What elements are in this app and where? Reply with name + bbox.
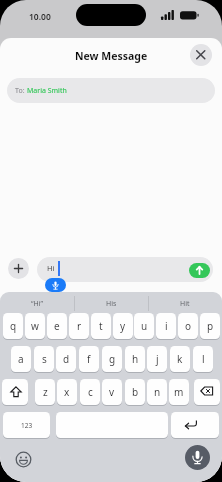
staticText: h bbox=[132, 352, 139, 366]
staticText: o bbox=[185, 319, 192, 333]
staticText: z bbox=[43, 385, 48, 399]
button[interactable]: h bbox=[125, 346, 145, 372]
button[interactable] bbox=[2, 379, 28, 405]
staticText: b bbox=[132, 385, 139, 399]
button[interactable]: f bbox=[79, 346, 99, 372]
button[interactable] bbox=[45, 278, 66, 292]
button[interactable]: j bbox=[147, 346, 167, 372]
button[interactable]: 123 bbox=[3, 412, 50, 438]
button[interactable] bbox=[194, 379, 220, 405]
staticText: a bbox=[18, 352, 24, 366]
button[interactable]: q bbox=[3, 313, 23, 339]
button[interactable]: o bbox=[178, 313, 198, 339]
button[interactable]: Hit bbox=[157, 296, 213, 311]
staticText: n bbox=[154, 385, 161, 399]
staticText: y bbox=[120, 319, 126, 333]
button[interactable] bbox=[189, 263, 210, 278]
staticText: Hit bbox=[180, 299, 190, 309]
button[interactable]: n bbox=[147, 379, 167, 405]
staticText: k bbox=[177, 352, 183, 366]
button[interactable]: z bbox=[35, 379, 55, 405]
staticText: x bbox=[64, 385, 70, 399]
staticText: r bbox=[77, 319, 82, 333]
staticText: e bbox=[54, 319, 60, 333]
button[interactable]: m bbox=[169, 379, 189, 405]
staticText: u bbox=[141, 319, 148, 333]
staticText: “Hi” bbox=[31, 299, 44, 309]
staticText: To: bbox=[15, 86, 27, 96]
button[interactable]: k bbox=[170, 346, 190, 372]
button[interactable]: d bbox=[56, 346, 76, 372]
staticText: c bbox=[88, 385, 93, 399]
button[interactable]: a bbox=[11, 346, 31, 372]
staticText: q bbox=[10, 319, 17, 333]
button[interactable]: His bbox=[83, 296, 139, 311]
button[interactable]: i bbox=[156, 313, 176, 339]
staticText: d bbox=[63, 352, 70, 366]
staticText: j bbox=[156, 352, 159, 366]
button[interactable]: x bbox=[57, 379, 77, 405]
button[interactable]: l bbox=[193, 346, 213, 372]
staticText: v bbox=[109, 385, 115, 399]
staticText: 123 bbox=[21, 421, 33, 430]
button[interactable]: s bbox=[34, 346, 54, 372]
button[interactable]: c bbox=[80, 379, 100, 405]
button[interactable]: e bbox=[47, 313, 67, 339]
button[interactable]: g bbox=[102, 346, 122, 372]
staticText: Hi bbox=[47, 263, 55, 273]
staticText: s bbox=[42, 352, 47, 366]
button[interactable] bbox=[8, 258, 29, 279]
staticText: New Message bbox=[75, 49, 148, 63]
button[interactable] bbox=[190, 44, 212, 66]
button[interactable]: y bbox=[113, 313, 133, 339]
staticText: Maria Smith bbox=[27, 86, 67, 96]
button[interactable]: To: bbox=[7, 78, 215, 103]
button[interactable]: “Hi” bbox=[9, 296, 65, 311]
staticText: 10.00 bbox=[29, 11, 51, 23]
button[interactable]: p bbox=[200, 313, 220, 339]
button[interactable] bbox=[15, 451, 32, 468]
button[interactable]: b bbox=[125, 379, 145, 405]
button[interactable] bbox=[185, 445, 210, 470]
button[interactable]: w bbox=[25, 313, 45, 339]
button[interactable]: r bbox=[69, 313, 89, 339]
button[interactable]: u bbox=[134, 313, 154, 339]
button[interactable] bbox=[171, 412, 219, 438]
staticText: w bbox=[31, 319, 39, 333]
button[interactable] bbox=[56, 412, 168, 438]
button[interactable]: t bbox=[91, 313, 111, 339]
staticText: i bbox=[165, 319, 168, 333]
staticText: t bbox=[99, 319, 103, 333]
staticText: m bbox=[174, 385, 184, 399]
staticText: g bbox=[109, 352, 116, 366]
staticText: f bbox=[87, 352, 91, 366]
button[interactable] bbox=[37, 257, 213, 282]
staticText: l bbox=[202, 352, 205, 366]
button[interactable]: v bbox=[102, 379, 122, 405]
staticText: p bbox=[207, 319, 214, 333]
staticText: His bbox=[106, 299, 117, 309]
